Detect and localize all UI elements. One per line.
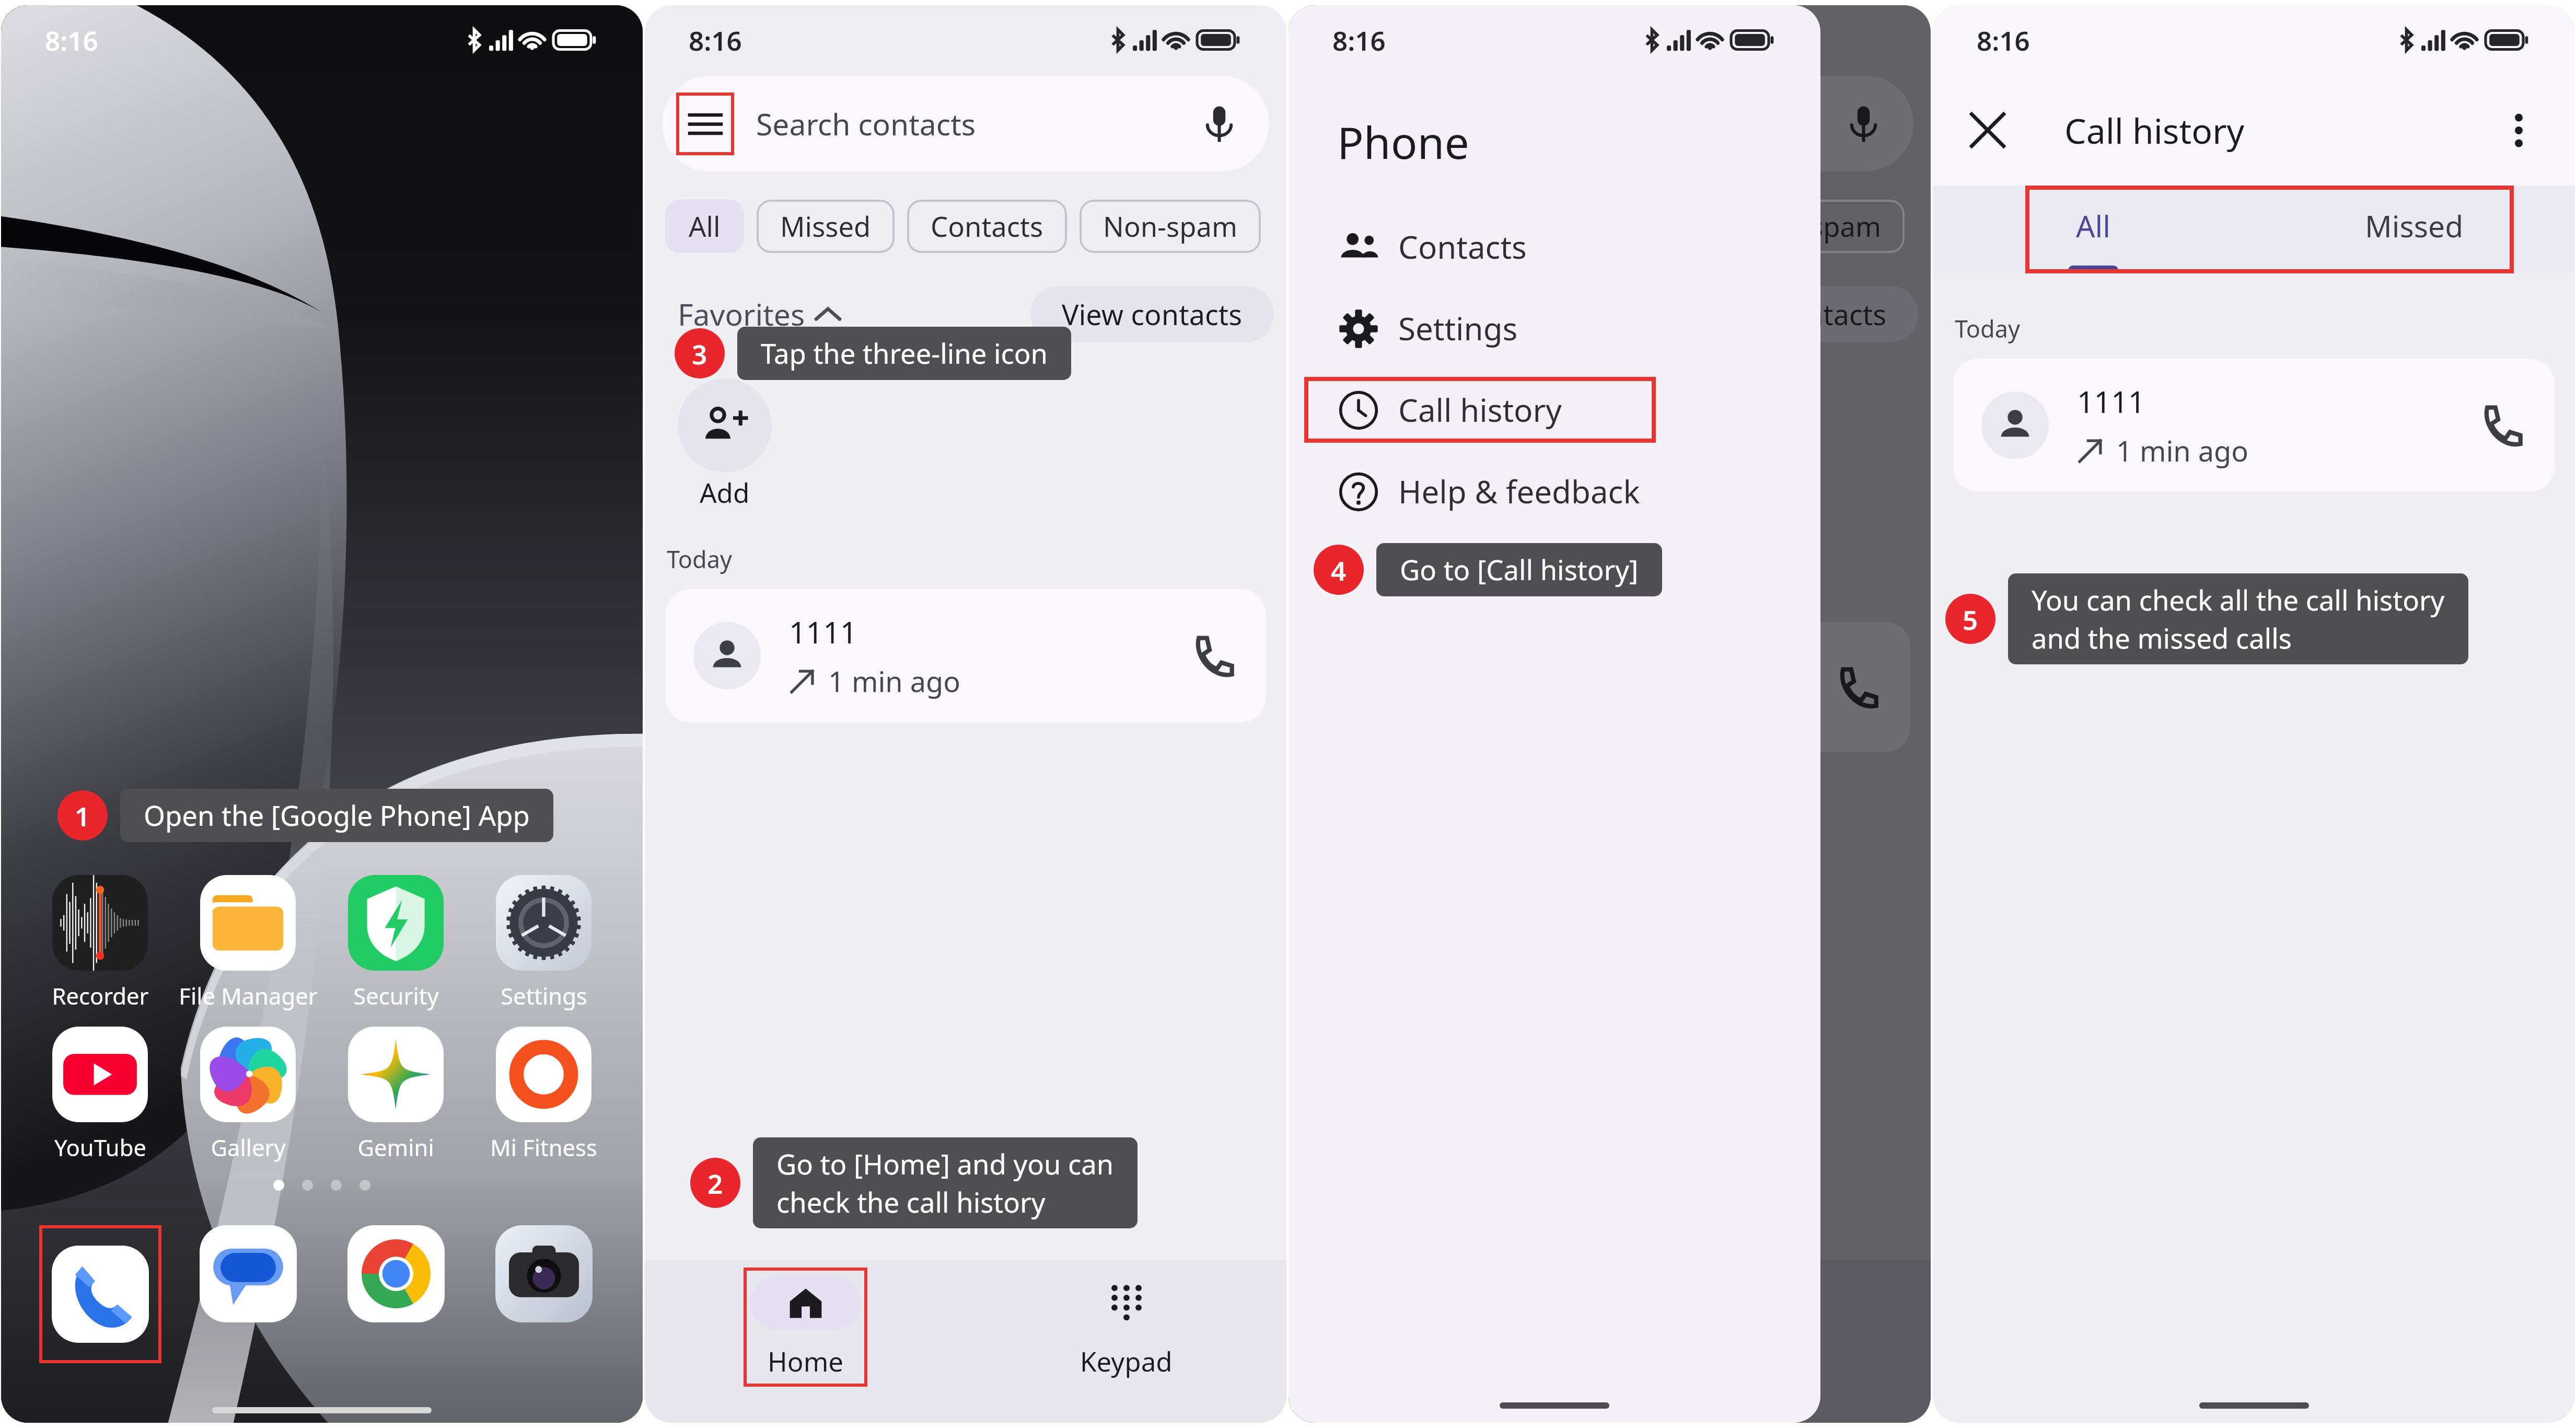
button[interactable]: View contacts: [1030, 286, 1274, 342]
button[interactable]: Open navigation menu: [662, 76, 1269, 171]
staticText: Add: [700, 474, 750, 510]
staticText: Mi Fitness: [490, 1132, 597, 1162]
staticText: 2: [707, 1165, 723, 1201]
staticText: Help & feedback: [1398, 470, 1640, 513]
button[interactable]: File Manager: [174, 875, 322, 1011]
staticText: Non-spam: [1103, 208, 1237, 245]
staticText: 5: [1963, 601, 1978, 637]
staticText: Add: [1343, 485, 1394, 521]
button[interactable]: Camera: [495, 1225, 593, 1322]
staticText: 8:16: [1332, 22, 1386, 58]
button[interactable]: Security: [322, 875, 470, 1011]
button[interactable]: All: [1933, 186, 2254, 266]
other: Open navigation menu: [676, 93, 734, 155]
button[interactable]: Home: [744, 1268, 867, 1387]
staticText: Go to [Home] and you can check the call …: [776, 1145, 1114, 1220]
staticText: Go to [Call history]: [1400, 551, 1639, 589]
button[interactable]: Call history: [1304, 377, 1656, 443]
staticText: 1111: [2077, 381, 2145, 422]
staticText: Settings: [501, 980, 587, 1011]
staticText: Open the [Google Phone] App: [144, 797, 530, 834]
staticText: Call history: [1398, 388, 1562, 431]
button[interactable]: 1111: [1953, 359, 2555, 492]
button[interactable]: Phone: [52, 1246, 149, 1343]
staticText: Missed: [780, 208, 871, 245]
button[interactable]: Contacts: [1289, 214, 1820, 280]
staticText: Phone: [1337, 112, 1469, 171]
staticText: Call history: [2064, 107, 2245, 154]
staticText: Contacts: [931, 208, 1043, 245]
staticText: All: [1332, 208, 1364, 245]
staticText: Recorder: [52, 980, 149, 1011]
staticText: Non-spam: [1747, 208, 1881, 245]
staticText: Favorites: [1321, 294, 1449, 335]
staticText: Settings: [1398, 307, 1518, 350]
button[interactable]: Gallery: [174, 1027, 322, 1162]
staticText: Tap the three-line icon: [761, 335, 1048, 372]
staticText: Today: [1955, 313, 2020, 344]
button[interactable]: Non-spam: [1080, 200, 1261, 253]
button[interactable]: Favorites: [678, 294, 840, 335]
staticText: All: [2076, 205, 2110, 246]
staticText: Search contacts: [756, 103, 976, 144]
staticText: 8:16: [689, 22, 742, 58]
button[interactable]: YouTube: [26, 1027, 174, 1162]
staticText: Missed: [2365, 205, 2464, 246]
button[interactable]: Gemini: [322, 1027, 470, 1162]
button[interactable]: All: [665, 200, 744, 253]
button[interactable]: Voice search: [1196, 100, 1243, 147]
button[interactable]: Keypad: [1064, 1268, 1188, 1387]
staticText: Home: [768, 1343, 844, 1379]
staticText: View contacts: [1062, 295, 1243, 333]
staticText: You can check all the call history and t…: [2032, 581, 2445, 657]
button[interactable]: Recorder: [26, 875, 174, 1011]
staticText: Favorites: [678, 294, 805, 335]
button[interactable]: Add favorite: [678, 378, 772, 473]
staticText: 8:16: [1977, 22, 2030, 58]
staticText: 1 min ago: [828, 662, 960, 700]
staticText: YouTube: [54, 1132, 146, 1162]
button[interactable]: More options: [2490, 102, 2547, 158]
staticText: 1111: [789, 612, 857, 652]
staticText: Security: [353, 980, 439, 1011]
staticText: 1: [75, 798, 90, 834]
staticText: All: [689, 208, 721, 245]
staticText: Gallery: [211, 1132, 286, 1162]
button[interactable]: Settings: [470, 875, 618, 1011]
staticText: View contacts: [1706, 295, 1887, 333]
button[interactable]: Missed: [2254, 186, 2575, 266]
staticText: Gemini: [357, 1132, 434, 1162]
button[interactable]: Mi Fitness: [470, 1027, 618, 1162]
button[interactable]: Help & feedback: [1289, 458, 1820, 524]
staticText: Today: [667, 543, 732, 575]
staticText: 3: [692, 336, 707, 372]
button[interactable]: Settings: [1289, 295, 1820, 361]
button[interactable]: Call: [2473, 399, 2526, 452]
button[interactable]: Missed: [757, 200, 895, 253]
staticText: Keypad: [1080, 1343, 1173, 1379]
staticText: Today: [1310, 576, 1376, 608]
button[interactable]: Messages: [200, 1225, 297, 1322]
staticText: 4: [1331, 552, 1347, 588]
staticText: 8:16: [45, 22, 98, 58]
button[interactable]: 1111: [665, 589, 1266, 722]
staticText: Contacts: [1398, 225, 1527, 268]
button[interactable]: Contacts: [907, 200, 1067, 253]
staticText: 1 min ago: [2116, 431, 2248, 470]
staticText: File Manager: [179, 980, 318, 1011]
staticText: Missed: [1424, 208, 1515, 245]
button[interactable]: Call: [1185, 629, 1238, 683]
button[interactable]: Close: [1959, 102, 2016, 158]
button[interactable]: Chrome: [347, 1225, 445, 1322]
